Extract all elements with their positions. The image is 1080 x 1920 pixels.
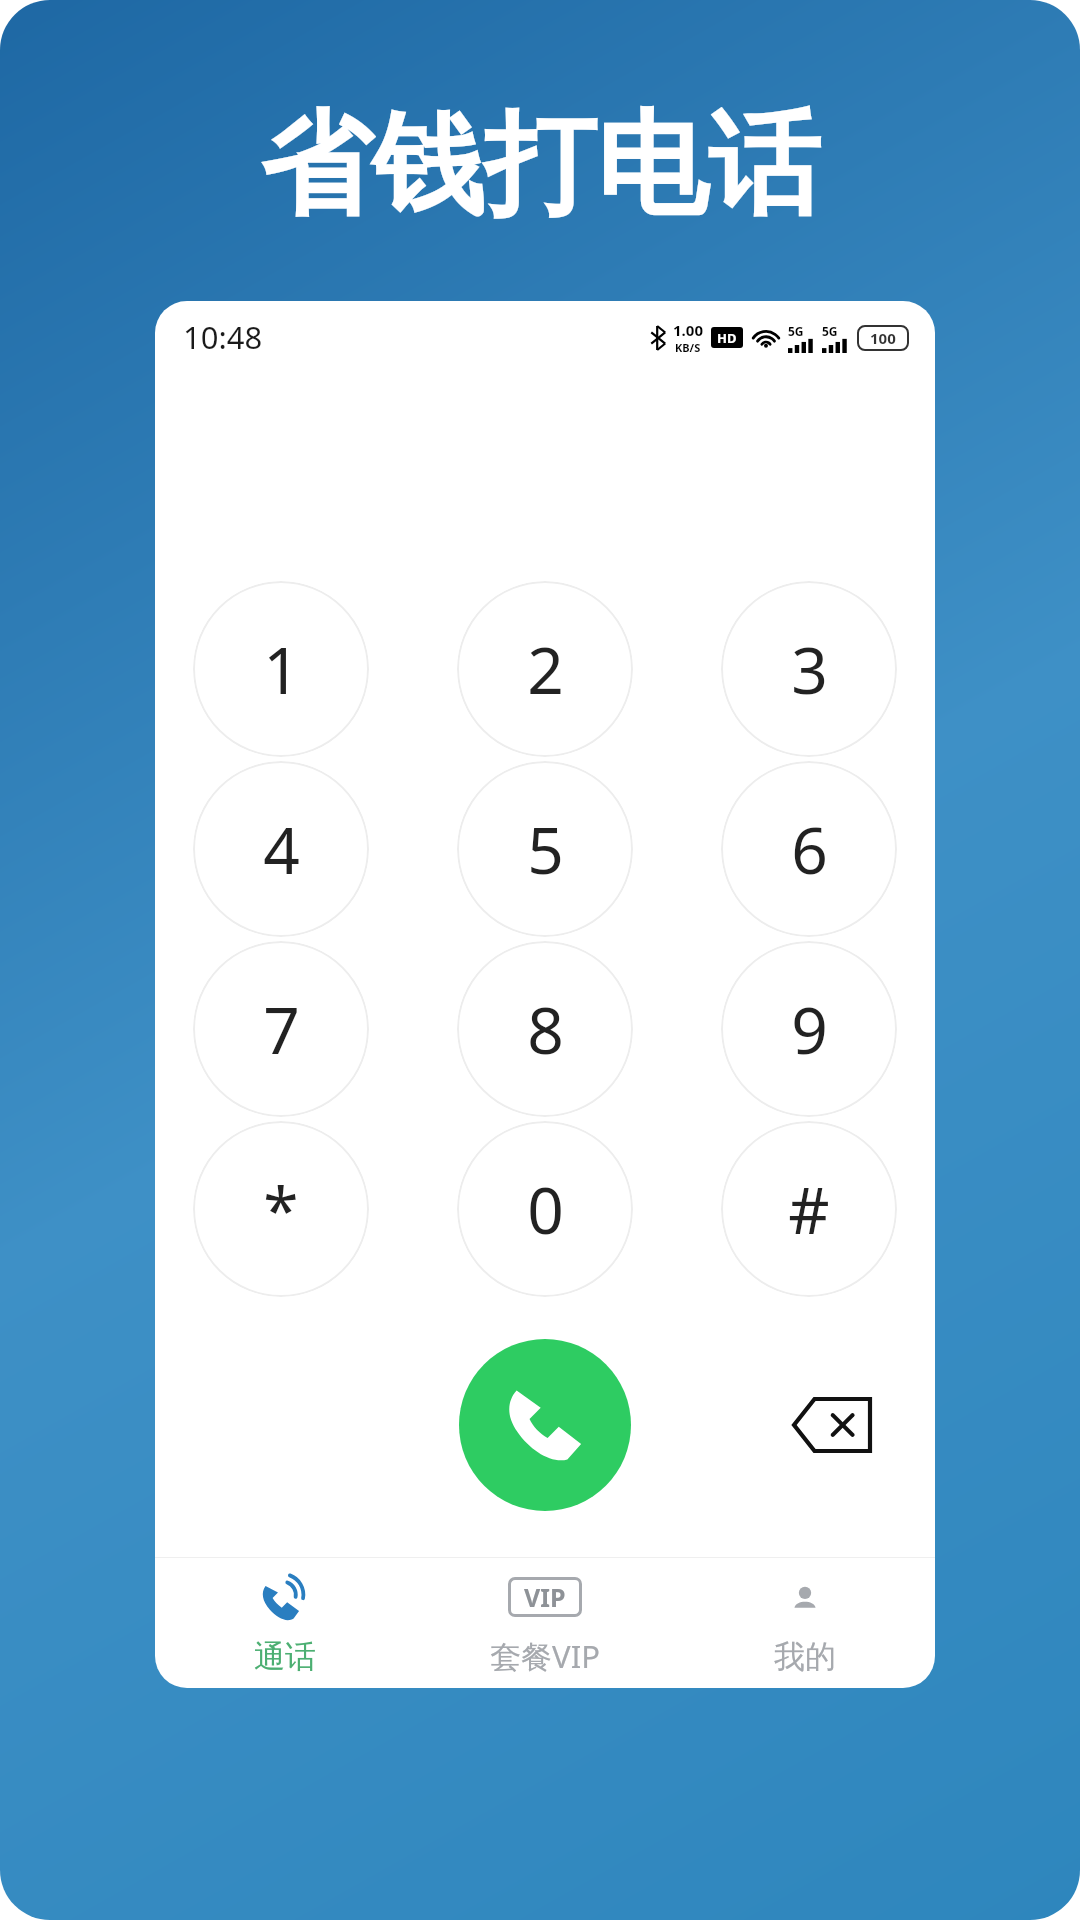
staticText: 8 xyxy=(527,986,564,1073)
button[interactable]: Backspace xyxy=(777,1370,887,1480)
staticText: 5 xyxy=(527,806,564,893)
staticText: 我的 xyxy=(774,1637,836,1676)
staticText: 1 xyxy=(263,626,300,713)
button[interactable]: 3 xyxy=(721,581,897,757)
button[interactable]: 通话 xyxy=(155,1558,415,1688)
staticText: 4 xyxy=(263,806,300,893)
button[interactable]: # xyxy=(721,1121,897,1297)
button[interactable]: 0 xyxy=(457,1121,633,1297)
button[interactable]: 我的 xyxy=(675,1558,935,1688)
staticText: 5G xyxy=(822,323,838,339)
staticText: 6 xyxy=(791,806,828,893)
button[interactable]: VIP xyxy=(415,1558,675,1688)
button[interactable]: 4 xyxy=(193,761,369,937)
staticText: KB/S xyxy=(675,340,701,355)
staticText: 5G xyxy=(788,323,804,339)
staticText: 省钱打电话 xyxy=(260,95,820,236)
staticText: * xyxy=(263,1166,299,1253)
button[interactable]: 5 xyxy=(457,761,633,937)
button[interactable]: 9 xyxy=(721,941,897,1117)
staticText: 3 xyxy=(791,626,828,713)
staticText: 9 xyxy=(791,986,828,1073)
staticText: 7 xyxy=(263,986,300,1073)
staticText: 2 xyxy=(527,626,564,713)
staticText: 0 xyxy=(527,1166,564,1253)
button[interactable]: Call xyxy=(459,1339,631,1511)
staticText: 1.00 xyxy=(673,320,703,340)
button[interactable]: 8 xyxy=(457,941,633,1117)
button[interactable]: * xyxy=(193,1121,369,1297)
staticText: 100 xyxy=(870,328,896,348)
button[interactable]: 6 xyxy=(721,761,897,937)
button[interactable]: 1 xyxy=(193,581,369,757)
button[interactable]: 7 xyxy=(193,941,369,1117)
staticText: HD xyxy=(717,329,737,347)
button[interactable]: 2 xyxy=(457,581,633,757)
staticText: 套餐VIP xyxy=(490,1635,600,1677)
staticText: # xyxy=(788,1166,830,1253)
staticText: VIP xyxy=(524,1580,566,1614)
staticText: 通话 xyxy=(254,1637,316,1676)
staticText: 10:48 xyxy=(183,316,263,358)
